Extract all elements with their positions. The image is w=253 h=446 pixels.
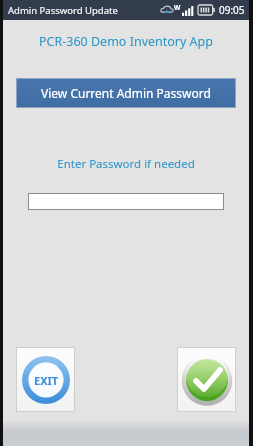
staticText: PCR-360 Demo Inventory App <box>3 33 249 50</box>
staticText: W <box>174 3 181 12</box>
staticText: View Current Admin Password <box>41 85 211 101</box>
staticText: Enter Password if needed <box>3 156 249 172</box>
button[interactable] <box>28 193 224 210</box>
staticText: EXIT <box>34 373 59 388</box>
staticText: 09:05 <box>219 3 245 17</box>
staticText: Admin Password Update <box>8 4 118 17</box>
button[interactable]: Exit <box>16 347 75 412</box>
button[interactable]: Confirm <box>177 347 236 412</box>
button[interactable]: View Current Admin Password <box>16 78 236 108</box>
